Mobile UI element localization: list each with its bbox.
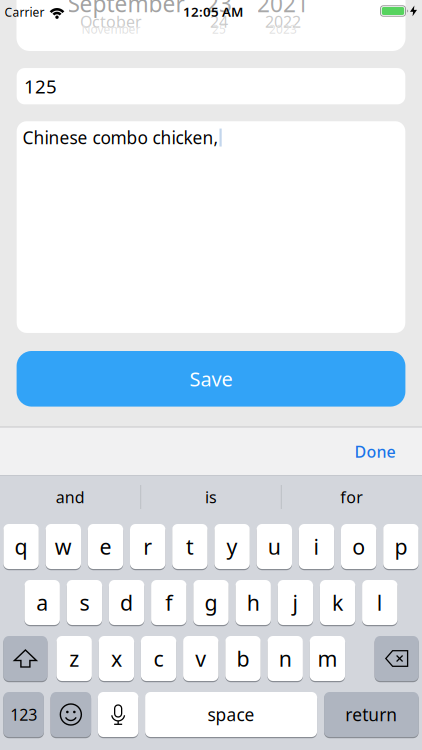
staticText: space xyxy=(208,703,255,726)
staticText: 2022 xyxy=(265,11,301,32)
button[interactable]: x xyxy=(99,635,134,682)
button[interactable]: space xyxy=(145,691,317,738)
staticText: u xyxy=(268,532,281,561)
button[interactable]: l xyxy=(362,579,397,626)
staticText: 123 xyxy=(10,704,37,725)
button[interactable]: Save xyxy=(17,351,405,407)
button[interactable]: u xyxy=(257,523,292,570)
button[interactable]: Done xyxy=(340,427,410,475)
button[interactable]: for xyxy=(287,475,417,519)
staticText: 2023 xyxy=(269,21,297,37)
button[interactable]: m xyxy=(310,635,345,682)
button[interactable]: q xyxy=(3,523,39,570)
staticText: f xyxy=(165,588,172,617)
staticText: e xyxy=(99,532,111,561)
button[interactable]: h xyxy=(235,579,271,626)
button[interactable]: Chinese combo chicken, xyxy=(17,121,405,333)
button[interactable]: Delete xyxy=(375,635,419,682)
staticText: w xyxy=(55,532,72,561)
staticText: o xyxy=(352,532,365,561)
button[interactable]: v xyxy=(183,635,218,682)
staticText: 25 xyxy=(212,21,226,37)
button[interactable]: e xyxy=(88,523,123,570)
staticText: m xyxy=(317,644,337,673)
staticText: k xyxy=(332,588,343,617)
button[interactable]: t xyxy=(172,523,208,570)
button[interactable]: Emoji xyxy=(51,691,91,738)
staticText: c xyxy=(154,644,164,673)
staticText: b xyxy=(236,644,249,673)
staticText: Chinese combo chicken, xyxy=(22,126,218,149)
staticText: g xyxy=(204,588,217,617)
button[interactable]: d xyxy=(109,579,144,626)
button[interactable]: z xyxy=(56,635,92,682)
button[interactable]: s xyxy=(67,579,102,626)
button[interactable]: is xyxy=(146,475,276,519)
staticText: x xyxy=(111,644,122,673)
staticText: 23 xyxy=(206,0,232,18)
staticText: for xyxy=(340,486,363,508)
staticText: h xyxy=(247,588,260,617)
button[interactable]: i xyxy=(299,523,334,570)
staticText: Done xyxy=(354,441,395,462)
staticText: return xyxy=(345,703,397,726)
staticText: q xyxy=(15,532,28,561)
button[interactable]: 123 xyxy=(3,691,44,738)
button[interactable]: n xyxy=(267,635,303,682)
staticText: t xyxy=(186,532,194,561)
button[interactable]: p xyxy=(383,523,419,570)
button[interactable]: a xyxy=(24,579,60,626)
staticText: s xyxy=(79,588,89,617)
button[interactable]: Shift xyxy=(3,635,47,682)
staticText: i xyxy=(313,532,319,561)
button[interactable]: and xyxy=(5,475,135,519)
button[interactable]: 125 xyxy=(17,68,405,104)
staticText: 24 xyxy=(210,11,228,32)
staticText: v xyxy=(195,644,206,673)
staticText: 12:05 AM xyxy=(183,3,243,20)
button[interactable]: b xyxy=(225,635,261,682)
staticText: j xyxy=(292,588,298,617)
staticText: y xyxy=(227,532,238,561)
button[interactable]: w xyxy=(46,523,81,570)
staticText: p xyxy=(394,532,407,561)
staticText: r xyxy=(143,532,152,561)
staticText: n xyxy=(279,644,292,673)
staticText: and xyxy=(56,486,85,508)
staticText: November xyxy=(81,21,140,37)
button[interactable]: f xyxy=(151,579,186,626)
staticText: Save xyxy=(189,365,232,392)
button[interactable]: r xyxy=(130,523,165,570)
staticText: d xyxy=(120,588,133,617)
staticText: 125 xyxy=(24,74,57,99)
staticText: l xyxy=(377,588,383,617)
button[interactable]: c xyxy=(141,635,176,682)
staticText: Carrier xyxy=(4,4,44,20)
staticText: a xyxy=(36,588,48,617)
staticText: October xyxy=(80,11,142,32)
staticText: September xyxy=(67,0,184,18)
button[interactable]: k xyxy=(320,579,355,626)
button[interactable]: j xyxy=(278,579,313,626)
button[interactable]: y xyxy=(214,523,250,570)
button[interactable]: Dictate xyxy=(98,691,138,738)
staticText: 2021 xyxy=(257,0,309,18)
button[interactable]: o xyxy=(341,523,376,570)
staticText: z xyxy=(69,644,79,673)
button[interactable]: return xyxy=(324,691,419,738)
button[interactable]: g xyxy=(193,579,229,626)
staticText: is xyxy=(205,486,217,508)
